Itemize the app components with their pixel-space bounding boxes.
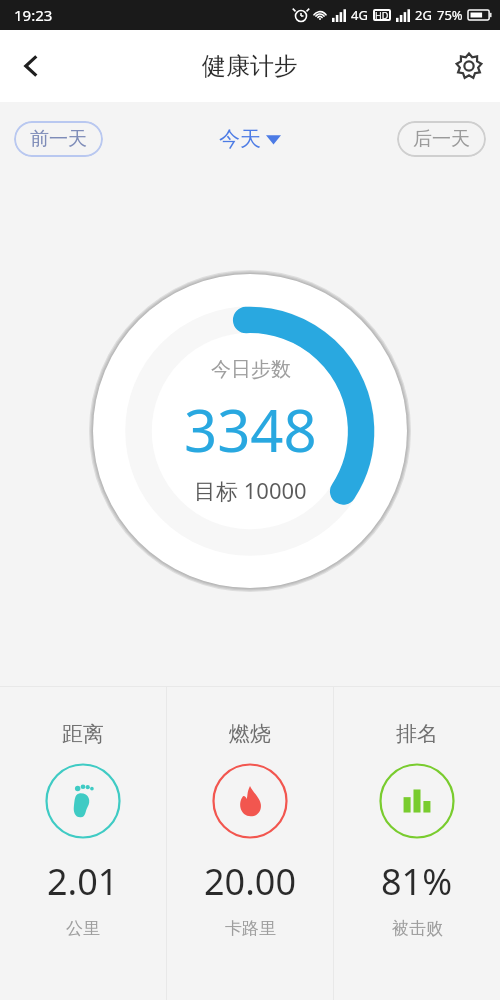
staticText: 2G [415, 6, 432, 24]
staticText: 75% [437, 6, 463, 24]
staticText: 目标 10000 [194, 475, 307, 505]
staticText: 健康计步 [202, 51, 298, 81]
staticText: 81% [381, 857, 453, 906]
staticText: 后一天 [413, 127, 470, 151]
button[interactable]: Settings [438, 35, 500, 97]
staticText: 2.01 [47, 857, 119, 906]
button[interactable]: Back [0, 35, 62, 97]
staticText: 今天 [219, 126, 261, 152]
staticText: 被击败 [392, 918, 443, 939]
staticText: 3348 [184, 390, 317, 469]
staticText: 前一天 [30, 127, 87, 151]
button[interactable]: 后一天 [397, 121, 486, 157]
button[interactable]: 今日步数 [89, 270, 411, 592]
staticText: 卡路里 [225, 918, 276, 939]
button[interactable]: 前一天 [14, 121, 103, 157]
staticText: HD [375, 9, 389, 21]
button[interactable]: 距离 [0, 687, 166, 1000]
staticText: 距离 [62, 721, 104, 747]
button[interactable]: 燃烧 [167, 687, 333, 1000]
staticText: 19:23 [14, 5, 53, 25]
button[interactable]: 今天 [211, 122, 289, 156]
staticText: 排名 [396, 721, 438, 747]
staticText: 公里 [66, 918, 100, 939]
staticText: 4G [351, 6, 368, 24]
staticText: 20.00 [204, 857, 297, 906]
staticText: 燃烧 [229, 721, 271, 747]
button[interactable]: 排名 [334, 687, 500, 1000]
staticText: 今日步数 [211, 357, 291, 382]
